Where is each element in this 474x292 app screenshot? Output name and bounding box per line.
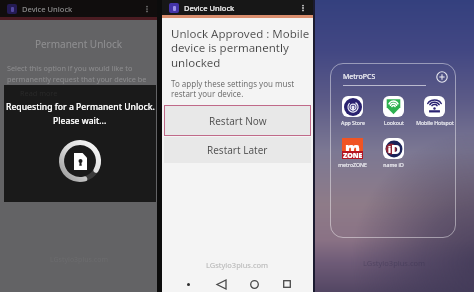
staticText: Restart Later	[207, 143, 268, 157]
staticText: Mobile Hotspot	[416, 119, 454, 126]
button[interactable]: Lookout	[373, 96, 414, 126]
staticText: Device Unlock	[22, 4, 73, 14]
staticText: Please wait...	[53, 115, 107, 127]
button[interactable]: Add app	[436, 71, 448, 83]
staticText: LGstylo3plus.com	[363, 258, 426, 268]
button[interactable]: App Store	[332, 96, 373, 126]
button[interactable]: Home	[247, 277, 261, 291]
staticText: Requesting for a Permanent Unlock.	[6, 101, 155, 113]
staticText: metroZONE	[338, 161, 367, 168]
staticText: Permanent Unlock	[0, 37, 157, 51]
button[interactable]: Recents	[280, 277, 294, 291]
button[interactable]: Restart Later	[164, 137, 311, 163]
staticText: Unlock Approved : Mobile device is perma…	[171, 26, 311, 71]
staticText: To apply these settings you must restart…	[171, 78, 304, 99]
staticText: Read more	[20, 88, 58, 98]
button[interactable]: More options	[297, 2, 309, 14]
staticText: i	[388, 143, 391, 155]
staticText: App Store	[341, 119, 365, 126]
button[interactable]: m	[332, 138, 373, 168]
staticText: MetroPCS	[343, 72, 376, 82]
button[interactable]: More options	[141, 3, 153, 15]
staticText: LGstylo3plus.com	[206, 260, 269, 270]
staticText: Restart Now	[209, 114, 267, 128]
staticText: Select this option if you would like to …	[7, 63, 153, 95]
button[interactable]: Read more	[20, 100, 58, 110]
staticText: ZONE	[343, 151, 363, 159]
staticText: Device Unlock	[184, 3, 235, 13]
staticText: D	[391, 140, 401, 158]
staticText: name iD	[383, 161, 404, 168]
button[interactable]: Restart Now	[164, 105, 311, 136]
staticText: Lookout	[384, 119, 404, 126]
staticText: m	[345, 138, 361, 151]
button[interactable]: D	[373, 138, 414, 168]
button[interactable]: Menu	[181, 277, 195, 291]
button[interactable]: Mobile Hotspot	[414, 96, 455, 126]
button[interactable]: Back	[214, 277, 228, 291]
